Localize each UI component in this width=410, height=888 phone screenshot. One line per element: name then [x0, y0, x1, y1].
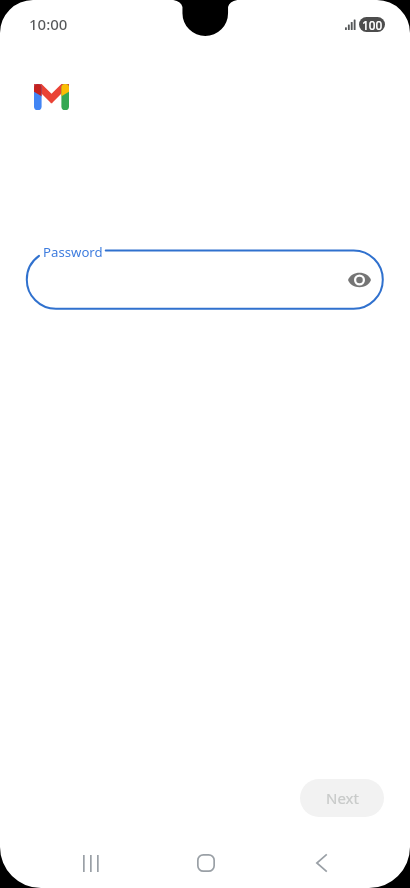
button[interactable]: Home [175, 840, 237, 886]
staticText: 10:00 [29, 14, 68, 34]
button[interactable]: Recent apps [60, 840, 122, 886]
button[interactable]: Back [290, 840, 352, 886]
staticText: Password [43, 243, 103, 261]
staticText: Next [326, 788, 359, 808]
staticText: 100 [362, 17, 383, 32]
button[interactable]: Show password [339, 260, 379, 300]
button[interactable]: Next [300, 779, 384, 817]
